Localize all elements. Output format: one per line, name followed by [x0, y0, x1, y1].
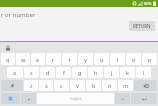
button[interactable]: d — [40, 67, 55, 78]
button[interactable]: n — [102, 80, 117, 91]
staticText: n — [108, 82, 112, 89]
button[interactable]: o — [126, 53, 141, 65]
button[interactable]: e — [31, 53, 45, 65]
staticText: q — [6, 56, 10, 63]
button[interactable]: f — [56, 67, 71, 78]
button[interactable]: p — [142, 53, 157, 65]
button[interactable]: h — [88, 67, 103, 78]
button[interactable]: m — [118, 80, 133, 91]
staticText: b — [92, 82, 96, 89]
button[interactable]: k — [120, 67, 135, 78]
button[interactable]: c — [54, 80, 69, 91]
button[interactable]: l — [136, 67, 151, 78]
button[interactable]: y — [78, 53, 93, 65]
staticText: English — [70, 96, 82, 101]
staticText: o — [132, 56, 136, 63]
button[interactable]: Backspace — [134, 80, 157, 91]
staticText: RETURN — [133, 23, 151, 29]
button[interactable]: v — [70, 80, 85, 91]
button[interactable]: z — [24, 80, 38, 91]
button[interactable]: t — [62, 53, 77, 65]
staticText: r — [52, 56, 55, 63]
staticText: c — [60, 82, 63, 89]
staticText: z — [30, 82, 33, 89]
staticText: p — [148, 56, 152, 63]
staticText: f — [63, 69, 65, 76]
button[interactable]: q — [1, 53, 15, 65]
staticText: t — [69, 56, 71, 63]
button[interactable]: Enter — [131, 93, 157, 104]
button[interactable]: r — [46, 53, 61, 65]
staticText: x — [45, 82, 48, 89]
button[interactable]: g — [72, 67, 87, 78]
staticText: l — [143, 69, 145, 76]
staticText: h — [94, 69, 98, 76]
button[interactable]: j — [104, 67, 119, 78]
staticText: u — [100, 56, 104, 63]
button[interactable]: i — [110, 53, 125, 65]
button[interactable]: w — [16, 53, 30, 65]
button[interactable]: a — [7, 67, 23, 78]
button[interactable]: RETURN — [129, 21, 155, 31]
button[interactable]: Space — [37, 93, 114, 104]
button[interactable]: Comma — [21, 93, 36, 104]
button[interactable]: s — [24, 67, 39, 78]
staticText: s — [30, 69, 33, 76]
button[interactable]: Secure input — [4, 44, 11, 51]
staticText: w — [21, 56, 26, 63]
button[interactable]: Period — [115, 93, 130, 104]
staticText: a — [13, 69, 17, 76]
staticText: e — [36, 56, 40, 63]
staticText: i — [117, 56, 119, 63]
staticText: 86% — [144, 1, 152, 6]
button[interactable]: Shift — [1, 80, 23, 91]
staticText: d — [46, 69, 50, 76]
button[interactable]: b — [86, 80, 101, 91]
staticText: r or number — [1, 11, 36, 19]
button[interactable]: Input options — [1, 93, 20, 104]
staticText: j — [111, 69, 113, 76]
button[interactable]: u — [94, 53, 109, 65]
staticText: v — [76, 82, 79, 89]
staticText: k — [126, 69, 129, 76]
staticText: m — [123, 82, 129, 89]
staticText: y — [84, 56, 87, 63]
button[interactable]: x — [39, 80, 53, 91]
staticText: g — [78, 69, 82, 76]
